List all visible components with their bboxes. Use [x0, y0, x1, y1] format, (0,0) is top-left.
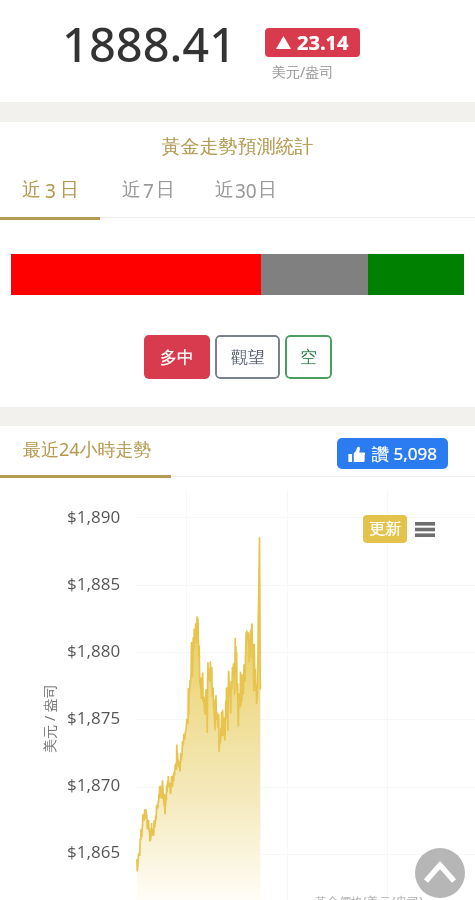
staticText: 3: [45, 178, 56, 204]
staticText: 更新: [369, 519, 401, 539]
button[interactable]: 多中: [144, 335, 210, 379]
button[interactable]: 近: [194, 178, 304, 218]
staticText: 1888.41: [62, 12, 237, 76]
staticText: 讚 5,098: [372, 442, 437, 465]
staticText: 近: [122, 178, 141, 202]
button[interactable]: 空: [285, 335, 332, 379]
staticText: $1,875: [67, 706, 121, 729]
button[interactable]: 最近24小時走勢: [0, 426, 129, 451]
staticText: 近: [215, 178, 234, 202]
staticText: — 黃金價格(美元/盎司): [300, 893, 423, 900]
staticText: 日: [60, 178, 79, 202]
staticText: $1,885: [67, 572, 121, 595]
staticText: 美元 / 盎司: [39, 683, 58, 753]
button[interactable]: 近: [0, 178, 100, 218]
staticText: $1,870: [67, 773, 121, 796]
staticText: $1,880: [67, 639, 121, 662]
staticText: 日: [258, 178, 277, 202]
staticText: 7: [143, 178, 154, 204]
staticText: 空: [300, 347, 317, 368]
staticText: $1,865: [67, 840, 121, 863]
button[interactable]: 近: [100, 178, 194, 218]
button[interactable]: 23.14: [265, 28, 360, 57]
staticText: 多中: [160, 347, 194, 368]
staticText: 美元/盎司: [272, 62, 334, 81]
button[interactable]: Scroll to top: [415, 848, 465, 898]
button[interactable]: Chart menu: [412, 516, 438, 542]
staticText: 最近24小時走勢: [23, 437, 152, 462]
button[interactable]: 讚 5,098: [337, 438, 448, 469]
staticText: 黃金走勢預測統計: [0, 135, 475, 159]
button[interactable]: 更新: [363, 515, 407, 543]
staticText: 30: [235, 178, 257, 204]
staticText: 23.14: [297, 29, 349, 56]
staticText: 觀望: [231, 347, 265, 368]
button[interactable]: 觀望: [215, 335, 280, 379]
staticText: 日: [156, 178, 175, 202]
staticText: 近: [22, 178, 41, 202]
staticText: $1,890: [67, 505, 121, 528]
